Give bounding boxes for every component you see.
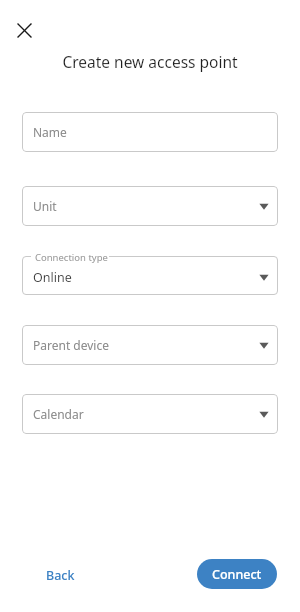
button[interactable]: Unit: [22, 186, 278, 226]
staticText: Create new access point: [62, 51, 238, 72]
staticText: Unit: [33, 198, 57, 214]
button[interactable]: Close: [12, 18, 36, 42]
button[interactable]: Name: [22, 112, 278, 152]
button[interactable]: Parent device: [22, 325, 278, 365]
staticText: Online: [33, 269, 72, 286]
staticText: Calendar: [33, 406, 84, 422]
button[interactable]: Calendar: [22, 394, 278, 434]
staticText: Connection type: [35, 251, 108, 264]
button[interactable]: Online: [22, 256, 278, 295]
staticText: Connect: [212, 566, 262, 583]
staticText: Back: [46, 567, 75, 584]
staticText: Name: [33, 124, 67, 140]
button[interactable]: Connect: [197, 559, 277, 589]
button[interactable]: Back: [34, 560, 87, 591]
staticText: Parent device: [33, 337, 109, 353]
